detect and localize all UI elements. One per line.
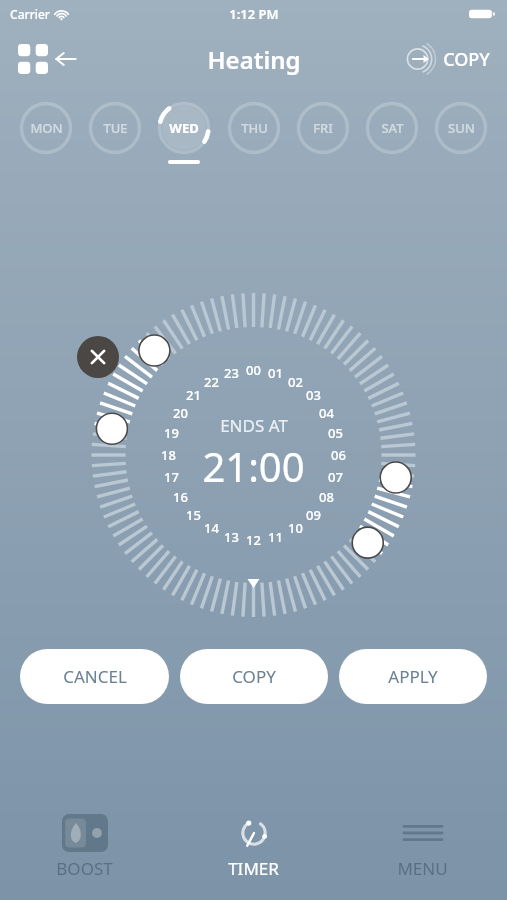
button[interactable]: APPLY: [339, 649, 487, 704]
button[interactable]: SAT: [364, 100, 420, 156]
staticText: TIMER: [228, 857, 279, 880]
staticText: Heating: [207, 43, 301, 76]
staticText: 06: [331, 446, 346, 464]
staticText: 07: [328, 468, 343, 486]
button[interactable]: CANCEL: [20, 649, 169, 704]
staticText: 08: [319, 488, 334, 506]
staticText: 10: [288, 519, 303, 537]
staticText: FRI: [313, 119, 333, 137]
staticText: CANCEL: [63, 665, 127, 688]
staticText: 23: [224, 364, 239, 382]
staticText: WED: [169, 119, 199, 137]
staticText: 00: [246, 361, 261, 379]
staticText: 21:00: [202, 439, 305, 493]
staticText: MENU: [397, 857, 448, 880]
button[interactable]: WED: [156, 100, 212, 156]
button[interactable]: THU: [226, 100, 282, 156]
staticText: 05: [328, 424, 343, 442]
button[interactable]: TIMER: [169, 806, 338, 886]
button[interactable]: FRI: [295, 100, 351, 156]
staticText: 22: [204, 373, 219, 391]
staticText: 11: [268, 528, 283, 546]
staticText: APPLY: [388, 665, 438, 688]
staticText: 19: [164, 424, 179, 442]
staticText: 1:12 PM: [229, 5, 279, 23]
staticText: BOOST: [56, 857, 113, 880]
button[interactable]: COPY: [401, 39, 493, 79]
staticText: SAT: [381, 119, 404, 137]
staticText: 01: [268, 364, 283, 382]
button[interactable]: COPY: [180, 649, 328, 704]
staticText: THU: [241, 119, 268, 137]
staticText: SUN: [448, 119, 475, 137]
staticText: 12: [246, 531, 261, 549]
button[interactable]: MENU: [338, 806, 507, 886]
staticText: 14: [204, 519, 219, 537]
staticText: 09: [306, 506, 321, 524]
staticText: 20: [173, 404, 188, 422]
staticText: 15: [186, 506, 201, 524]
staticText: TUE: [103, 119, 128, 137]
staticText: 02: [288, 373, 303, 391]
staticText: Carrier: [10, 6, 50, 22]
staticText: 18: [161, 446, 176, 464]
button[interactable]: MON: [18, 100, 74, 156]
staticText: 04: [319, 404, 334, 422]
staticText: COPY: [232, 665, 276, 688]
button[interactable]: TUE: [87, 100, 143, 156]
staticText: 16: [173, 488, 188, 506]
button[interactable]: BOOST: [0, 806, 169, 886]
staticText: 03: [306, 386, 321, 404]
staticText: 17: [164, 468, 179, 486]
button[interactable]: Back to dashboard: [14, 40, 81, 78]
button[interactable]: Delete period: [77, 336, 119, 378]
staticText: MON: [30, 119, 63, 137]
staticText: 21: [186, 386, 201, 404]
staticText: 13: [224, 528, 239, 546]
staticText: COPY: [443, 47, 490, 72]
staticText: ENDS AT: [220, 414, 288, 437]
button[interactable]: SUN: [433, 100, 489, 156]
